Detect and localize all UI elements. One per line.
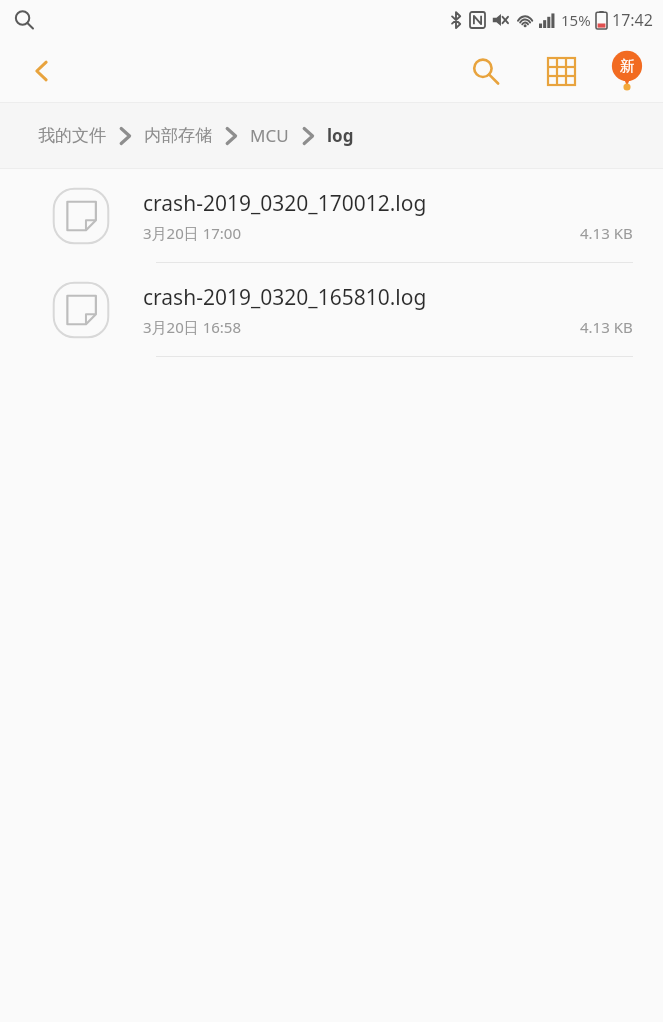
button[interactable]: 内部存储	[144, 119, 212, 152]
staticText: 我的文件	[38, 125, 106, 146]
staticText: 17:42	[612, 9, 653, 31]
staticText: 3月20日 16:58	[143, 317, 241, 337]
button[interactable]: Back	[18, 47, 66, 95]
staticText: 内部存储	[144, 125, 212, 146]
staticText: 4.13 KB	[580, 223, 633, 243]
staticText: crash-2019_0320_165810.log	[143, 283, 427, 312]
button[interactable]: 我的文件	[38, 119, 106, 152]
staticText: 4.13 KB	[580, 317, 633, 337]
staticText: crash-2019_0320_170012.log	[143, 189, 427, 218]
button[interactable]: crash-2019_0320_170012.log	[0, 169, 663, 263]
button[interactable]: What's new	[601, 45, 653, 97]
button[interactable]: log	[327, 118, 354, 153]
button[interactable]: Search	[459, 45, 511, 97]
staticText: 15%	[561, 10, 591, 30]
staticText: MCU	[250, 124, 289, 147]
staticText: 3月20日 17:00	[143, 223, 241, 243]
staticText: log	[327, 124, 354, 147]
button[interactable]: View as grid	[535, 45, 587, 97]
button[interactable]: crash-2019_0320_165810.log	[0, 263, 663, 357]
button[interactable]: MCU	[250, 118, 289, 153]
staticText: 新	[620, 57, 635, 76]
